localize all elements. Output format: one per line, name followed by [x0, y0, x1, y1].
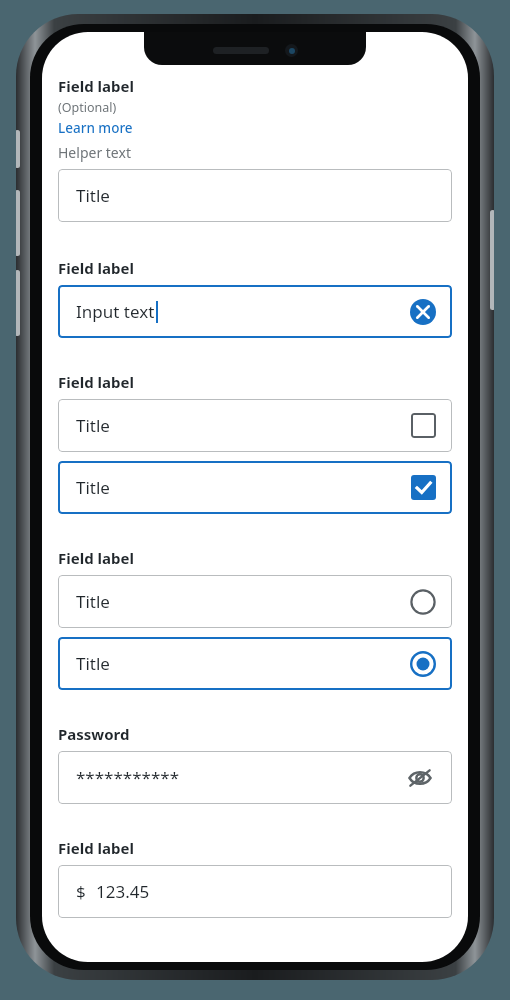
staticText: $	[76, 880, 86, 903]
staticText: Field label	[58, 548, 134, 568]
staticText: Password	[58, 724, 130, 744]
staticText: Input text	[76, 300, 155, 323]
button[interactable]: Learn more	[58, 119, 133, 137]
button[interactable]: Not selected	[410, 589, 436, 615]
staticText: ***********	[76, 766, 180, 789]
staticText: Title	[76, 652, 110, 675]
button[interactable]: Title	[58, 575, 452, 628]
button[interactable]: Title	[58, 637, 452, 690]
staticText: Field label	[58, 838, 134, 858]
button[interactable]: Input text	[58, 285, 452, 338]
staticText: Learn more	[58, 119, 133, 137]
staticText: Field label	[58, 258, 134, 278]
button[interactable]: $	[58, 865, 452, 918]
button[interactable]: Title	[58, 169, 452, 222]
staticText: Field label	[58, 372, 134, 392]
staticText: Title	[76, 476, 110, 499]
button[interactable]: Selected	[410, 651, 436, 677]
staticText: 123.45	[96, 880, 150, 903]
staticText: (Optional)	[58, 99, 117, 116]
staticText: Field label	[58, 76, 134, 96]
button[interactable]: Unchecked	[411, 413, 436, 438]
staticText: Title	[76, 184, 110, 207]
button[interactable]: Show password	[404, 762, 436, 794]
staticText: Title	[76, 414, 110, 437]
button[interactable]: Title	[58, 399, 452, 452]
button[interactable]: Checked	[411, 475, 436, 500]
staticText: Helper text	[58, 143, 131, 162]
button[interactable]: Title	[58, 461, 452, 514]
button[interactable]: Clear text	[410, 299, 436, 325]
staticText: Title	[76, 590, 110, 613]
button[interactable]: ***********	[58, 751, 452, 804]
